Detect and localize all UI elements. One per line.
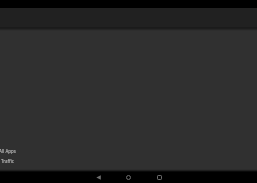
button[interactable]: Traffic [0, 156, 257, 166]
button[interactable]: All Apps [0, 146, 257, 156]
staticText: Traffic [1, 158, 15, 164]
button[interactable]: Back [89, 172, 107, 183]
button[interactable]: Recent apps [150, 172, 168, 183]
button[interactable]: Home [119, 172, 137, 183]
staticText: All Apps [0, 148, 16, 154]
